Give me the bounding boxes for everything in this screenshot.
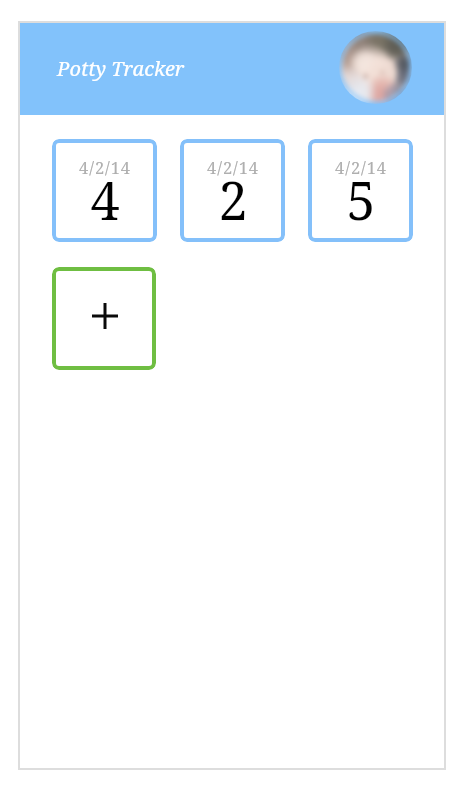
staticText: 4/2/14 <box>79 156 131 178</box>
staticText: 4 <box>90 164 120 235</box>
staticText: 4/2/14 <box>207 156 259 178</box>
button[interactable]: Add entry <box>52 267 156 370</box>
staticText: 2 <box>218 164 248 235</box>
button[interactable]: Profile <box>339 31 412 104</box>
button[interactable]: 4/2/14 <box>52 139 157 242</box>
staticText: Potty Tracker <box>57 55 185 82</box>
button[interactable]: 4/2/14 <box>308 139 413 242</box>
button[interactable]: 4/2/14 <box>180 139 285 242</box>
staticText: 5 <box>346 164 376 235</box>
staticText: 4/2/14 <box>335 156 387 178</box>
